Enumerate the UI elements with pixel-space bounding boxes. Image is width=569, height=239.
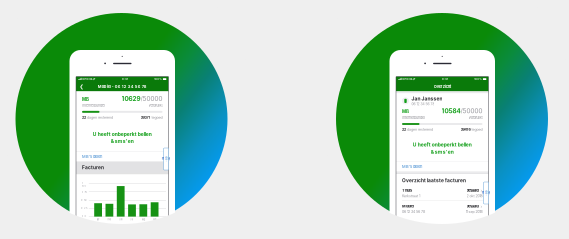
staticText: 39371 xyxy=(140,115,150,120)
staticText: tegoed xyxy=(150,115,162,120)
staticText: 11 sep 2018 xyxy=(465,209,482,214)
staticText: tegoed xyxy=(470,127,482,132)
staticText: verbruikt xyxy=(148,103,162,108)
staticText: verbruikt xyxy=(468,115,482,120)
staticText: 06 12 34 56 78 xyxy=(411,102,434,106)
staticText: dagen resterend xyxy=(406,127,433,132)
staticText: 9:41 xyxy=(122,77,128,81)
staticText: KPN NL xyxy=(401,78,412,81)
staticText: betaald xyxy=(466,204,478,208)
staticText: MB xyxy=(402,109,409,114)
button[interactable]: Thuis xyxy=(396,185,488,201)
staticText: 100% xyxy=(474,78,482,81)
staticText: /50000 xyxy=(140,95,162,103)
button[interactable]: Mobiel xyxy=(396,201,488,216)
button[interactable]: MB's delen xyxy=(76,152,168,161)
staticText: jul xyxy=(130,218,133,221)
staticText: Feedback xyxy=(484,188,489,198)
staticText: ❮ xyxy=(79,84,83,89)
staticText: 39416 xyxy=(460,127,470,132)
staticText: € 50 xyxy=(81,199,87,202)
staticText: /50000 xyxy=(460,107,482,115)
staticText: 9:41 xyxy=(442,77,448,81)
staticText: Mobiel xyxy=(402,204,414,208)
staticText: internetbundel xyxy=(82,103,105,108)
button[interactable]: Terug xyxy=(77,82,85,91)
staticText: Thuis xyxy=(402,188,412,193)
staticText: › xyxy=(478,188,482,193)
staticText: Overzicht laatste facturen xyxy=(402,178,466,183)
staticText: MB xyxy=(82,97,89,102)
staticText: betaald xyxy=(466,188,478,193)
staticText: MB's delen xyxy=(82,154,102,159)
staticText: 10584 xyxy=(441,107,460,115)
staticText: ◤ xyxy=(92,78,95,81)
staticText: Mobiel - 06 12 34 56 78 xyxy=(98,84,147,89)
staticText: € 25 xyxy=(81,207,87,210)
staticText: & sms'en xyxy=(431,149,454,155)
staticText: € 0 xyxy=(81,215,86,218)
staticText: Facturen xyxy=(82,165,104,170)
button[interactable]: Feedback xyxy=(483,182,489,204)
staticText: KPN NL xyxy=(81,78,92,81)
staticText: sep xyxy=(153,218,156,221)
staticText: › xyxy=(478,204,482,209)
staticText: U heeft onbeperkt bellen xyxy=(93,131,152,137)
staticText: Kerkstraat 1 xyxy=(402,194,420,198)
staticText: € 75 xyxy=(81,191,86,194)
staticText: MB's delen xyxy=(402,164,422,169)
staticText: 06 12 34 56 78 xyxy=(402,209,425,214)
staticText: Jan Janssen xyxy=(411,96,442,102)
staticText: € 100 xyxy=(81,181,86,187)
staticText: U heeft onbeperkt bellen xyxy=(413,142,472,148)
staticText: apr xyxy=(97,218,100,221)
staticText: Feedback xyxy=(164,154,169,164)
staticText: ◤ xyxy=(412,78,415,81)
staticText: 22 xyxy=(402,127,406,132)
staticText: 10629 xyxy=(121,95,140,103)
button[interactable]: MB's delen xyxy=(396,162,488,171)
staticText: jun xyxy=(119,218,122,221)
staticText: 2 okt 2018 xyxy=(466,194,482,198)
staticText: dagen resterend xyxy=(86,115,113,120)
staticText: mei xyxy=(107,218,111,221)
button[interactable]: Feedback xyxy=(163,148,169,170)
staticText: 100% xyxy=(154,78,162,81)
staticText: 22 xyxy=(82,115,86,120)
staticText: Overzicht xyxy=(434,84,451,89)
staticText: internetbundel xyxy=(402,115,425,120)
staticText: & sms'en xyxy=(111,138,134,144)
staticText: aug xyxy=(142,218,145,221)
